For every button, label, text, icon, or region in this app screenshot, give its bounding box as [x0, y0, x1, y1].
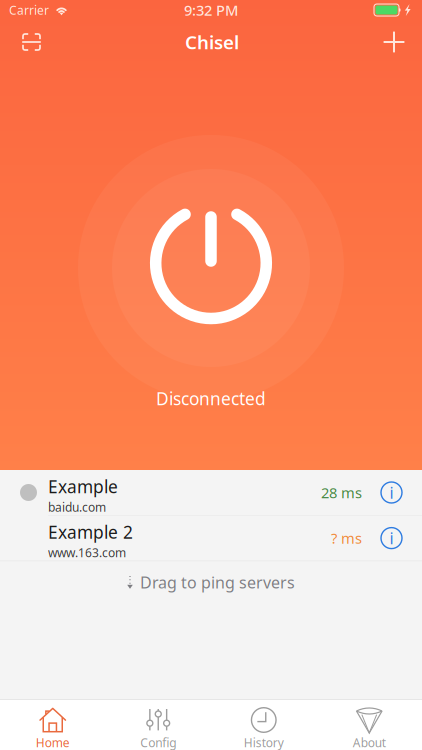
button[interactable]: Example: [0, 470, 422, 515]
staticText: 28 ms: [321, 483, 362, 502]
staticText: Example: [48, 475, 118, 498]
staticText: i: [389, 482, 393, 503]
staticText: Disconnected: [156, 387, 266, 410]
button[interactable]: Config: [105, 700, 211, 750]
staticText: Chisel: [185, 30, 239, 54]
staticText: baidu.com: [48, 499, 106, 515]
button[interactable]: Connect: [112, 169, 310, 367]
button[interactable]: About: [316, 700, 422, 750]
staticText: Config: [140, 734, 176, 750]
button[interactable]: Add server: [369, 20, 422, 64]
staticText: About: [353, 734, 386, 750]
staticText: Drag to ping servers: [140, 572, 295, 593]
staticText: Home: [36, 734, 70, 750]
staticText: History: [244, 734, 284, 750]
staticText: www.163.com: [48, 545, 126, 560]
button[interactable]: Scan QR code: [0, 22, 55, 62]
button[interactable]: Home: [0, 700, 105, 750]
staticText: Example 2: [48, 521, 133, 544]
staticText: ? ms: [331, 528, 362, 548]
staticText: Carrier: [9, 2, 49, 18]
button[interactable]: Example 2: [0, 516, 422, 561]
staticText: 9:32 PM: [184, 0, 238, 20]
button[interactable]: Server info: [362, 516, 422, 561]
staticText: i: [389, 527, 393, 549]
button[interactable]: History: [211, 700, 316, 750]
button[interactable]: Server info: [362, 470, 422, 515]
